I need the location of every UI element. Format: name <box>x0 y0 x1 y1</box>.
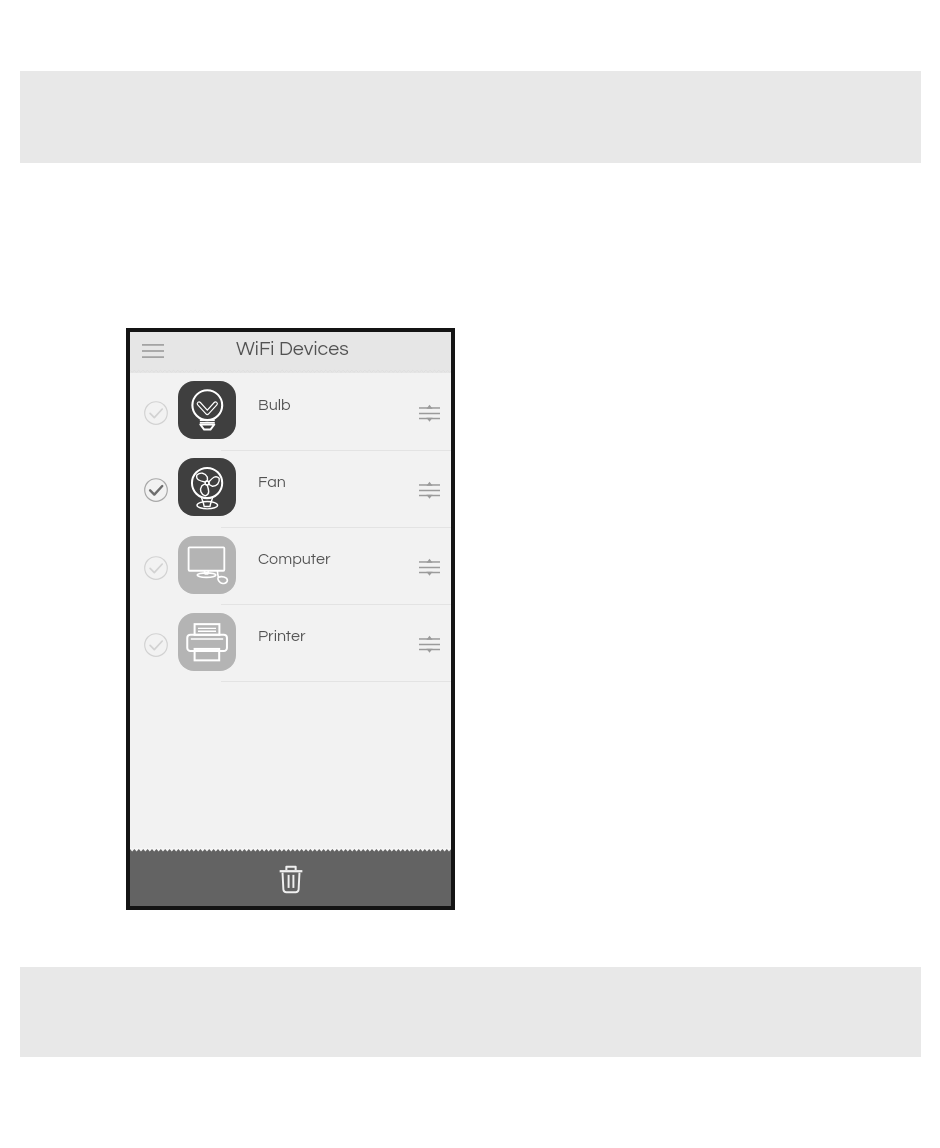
button[interactable]: Adjust Computer <box>419 559 440 576</box>
button[interactable]: Select Bulb <box>144 401 168 425</box>
button[interactable]: Select Printer <box>144 633 168 657</box>
button[interactable]: Adjust Bulb <box>419 405 440 422</box>
button[interactable]: Delete <box>275 863 307 896</box>
staticText: Fan <box>258 474 286 491</box>
staticText: Computer <box>258 551 331 568</box>
button[interactable]: Select Fan <box>144 478 168 502</box>
staticText: WiFi Devices <box>236 339 349 359</box>
staticText: Printer <box>258 628 306 645</box>
staticText: Bulb <box>258 397 291 414</box>
button[interactable]: Menu <box>141 342 165 360</box>
button[interactable]: Select Computer <box>130 528 451 605</box>
button[interactable]: Select Computer <box>144 556 168 580</box>
button[interactable]: Adjust Fan <box>419 482 440 499</box>
button[interactable]: Select Fan <box>130 450 451 528</box>
button[interactable]: Select Bulb <box>130 373 451 451</box>
button[interactable]: Select Printer <box>130 605 451 682</box>
button[interactable]: Adjust Printer <box>419 636 440 653</box>
